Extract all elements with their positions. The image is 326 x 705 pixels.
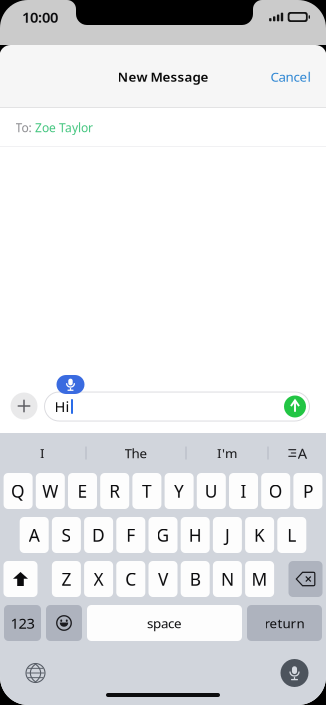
- button[interactable]: B: [181, 561, 210, 597]
- button[interactable]: G: [148, 517, 177, 553]
- staticText: return: [264, 614, 304, 632]
- button[interactable]: V: [148, 561, 177, 597]
- button[interactable]: T: [132, 473, 161, 509]
- staticText: Y: [174, 479, 184, 502]
- button[interactable]: F: [116, 517, 145, 553]
- staticText: space: [147, 614, 182, 632]
- staticText: 10:00: [22, 7, 58, 27]
- staticText: M: [252, 567, 268, 590]
- button[interactable]: Dictate: [280, 659, 308, 687]
- button[interactable]: S: [52, 517, 81, 553]
- staticText: J: [225, 523, 230, 546]
- staticText: To:: [15, 119, 31, 135]
- staticText: H: [189, 523, 202, 546]
- staticText: D: [92, 523, 105, 546]
- staticText: A: [298, 443, 307, 463]
- staticText: The: [124, 444, 147, 462]
- button[interactable]: Cancel: [262, 60, 318, 93]
- button[interactable]: J: [213, 517, 242, 553]
- button[interactable]: Z: [52, 561, 81, 597]
- button[interactable]: W: [36, 473, 65, 509]
- staticText: T: [142, 479, 152, 502]
- staticText: A: [29, 523, 40, 546]
- staticText: O: [269, 479, 283, 502]
- button[interactable]: return: [247, 605, 322, 641]
- staticText: L: [287, 523, 296, 546]
- staticText: New Message: [117, 68, 208, 85]
- button[interactable]: N: [213, 561, 242, 597]
- staticText: E: [77, 479, 87, 502]
- staticText: W: [42, 479, 58, 502]
- button[interactable]: Add: [10, 392, 37, 419]
- button[interactable]: X: [84, 561, 113, 597]
- button[interactable]: I: [229, 473, 258, 509]
- staticText: X: [94, 567, 104, 590]
- staticText: I: [40, 444, 45, 462]
- button[interactable]: 123: [4, 605, 41, 641]
- button[interactable]: I'm: [186, 433, 267, 473]
- button[interactable]: The: [86, 433, 185, 473]
- button[interactable]: Q: [4, 473, 33, 509]
- staticText: K: [254, 523, 265, 546]
- staticText: N: [221, 567, 234, 590]
- button[interactable]: M: [245, 561, 274, 597]
- staticText: R: [109, 479, 120, 502]
- button[interactable]: D: [84, 517, 113, 553]
- staticText: F: [126, 523, 135, 546]
- staticText: Cancel: [270, 68, 310, 85]
- button[interactable]: Change keyboard: [18, 656, 52, 690]
- staticText: I: [240, 479, 246, 502]
- button[interactable]: Y: [165, 473, 194, 509]
- button[interactable]: E: [68, 473, 97, 509]
- staticText: U: [205, 479, 218, 502]
- button[interactable]: R: [100, 473, 129, 509]
- button[interactable]: O: [261, 473, 290, 509]
- button[interactable]: Send: [284, 395, 306, 417]
- staticText: I'm: [217, 444, 237, 462]
- button[interactable]: A: [20, 517, 49, 553]
- button[interactable]: L: [277, 517, 306, 553]
- staticText: P: [303, 479, 313, 502]
- staticText: B: [190, 567, 201, 590]
- button[interactable]: K: [245, 517, 274, 553]
- button[interactable]: C: [116, 561, 145, 597]
- staticText: Z: [61, 567, 71, 590]
- button[interactable]: space: [87, 605, 242, 641]
- button[interactable]: Emoji: [46, 605, 82, 641]
- staticText: V: [158, 567, 168, 590]
- staticText: Hi: [54, 397, 69, 416]
- staticText: S: [61, 523, 71, 546]
- staticText: G: [156, 523, 169, 546]
- button[interactable]: H: [181, 517, 210, 553]
- button[interactable]: I: [0, 433, 85, 473]
- button[interactable]: Delete: [288, 561, 322, 597]
- staticText: C: [125, 567, 136, 590]
- button[interactable]: U: [197, 473, 226, 509]
- button[interactable]: Formatting: [268, 433, 326, 473]
- button[interactable]: P: [293, 473, 322, 509]
- staticText: Q: [11, 479, 25, 502]
- button[interactable]: Shift: [3, 561, 37, 597]
- staticText: 123: [10, 613, 34, 633]
- staticText: Zoe Taylor: [35, 119, 93, 135]
